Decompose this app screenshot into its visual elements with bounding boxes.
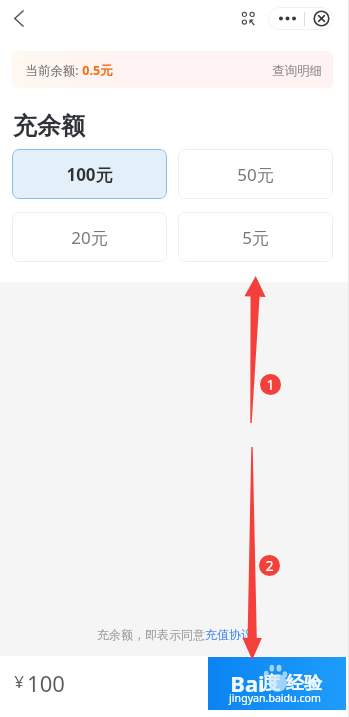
staticText: ¥ — [14, 670, 24, 693]
other: Step 1 — [260, 374, 281, 395]
staticText: 当前余额: — [25, 62, 79, 79]
staticText: 1 — [266, 375, 275, 394]
other: Step 2 — [259, 555, 280, 576]
staticText: 100 — [27, 668, 65, 698]
button[interactable]: Close — [305, 7, 334, 30]
staticText: 度 — [262, 672, 280, 695]
button[interactable]: Back — [5, 5, 31, 31]
staticText: jingyan.baidu.com — [229, 691, 321, 705]
button[interactable]: 20元 — [12, 212, 167, 262]
button[interactable]: 充值协议 — [205, 627, 253, 642]
button[interactable]: 当前余额: — [12, 51, 333, 88]
staticText: 充余额 — [13, 111, 85, 141]
staticText: Bai — [230, 668, 265, 698]
button[interactable]: Mini program — [236, 6, 261, 31]
staticText: 2 — [265, 556, 274, 575]
staticText: 100元 — [66, 163, 113, 186]
button[interactable]: 5元 — [178, 212, 333, 262]
staticText: 充余额，即表示同意 — [97, 627, 205, 642]
button[interactable]: 100元 — [12, 149, 167, 199]
staticText: 查询明细 — [272, 63, 322, 79]
button[interactable]: Bai — [208, 657, 346, 710]
staticText: 经验 — [286, 672, 322, 695]
button[interactable]: 50元 — [178, 149, 333, 199]
staticText: 0.5元 — [82, 62, 113, 79]
staticText: 20元 — [71, 226, 108, 249]
staticText: 5元 — [242, 226, 269, 249]
button[interactable]: More — [268, 7, 304, 30]
staticText: 50元 — [237, 163, 274, 186]
